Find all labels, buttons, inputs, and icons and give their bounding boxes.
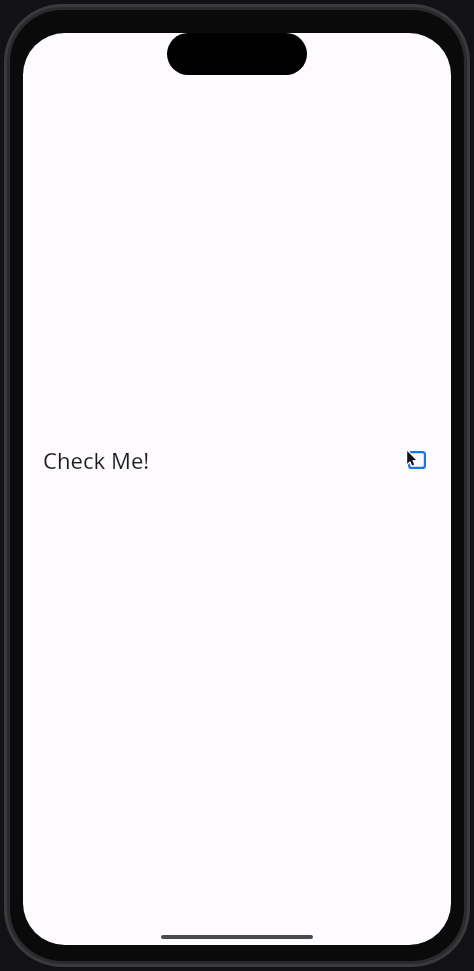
- other: Check Me! checkbox: [408, 451, 426, 469]
- staticText: Check Me!: [43, 445, 150, 475]
- button[interactable]: Check Me!: [23, 434, 451, 486]
